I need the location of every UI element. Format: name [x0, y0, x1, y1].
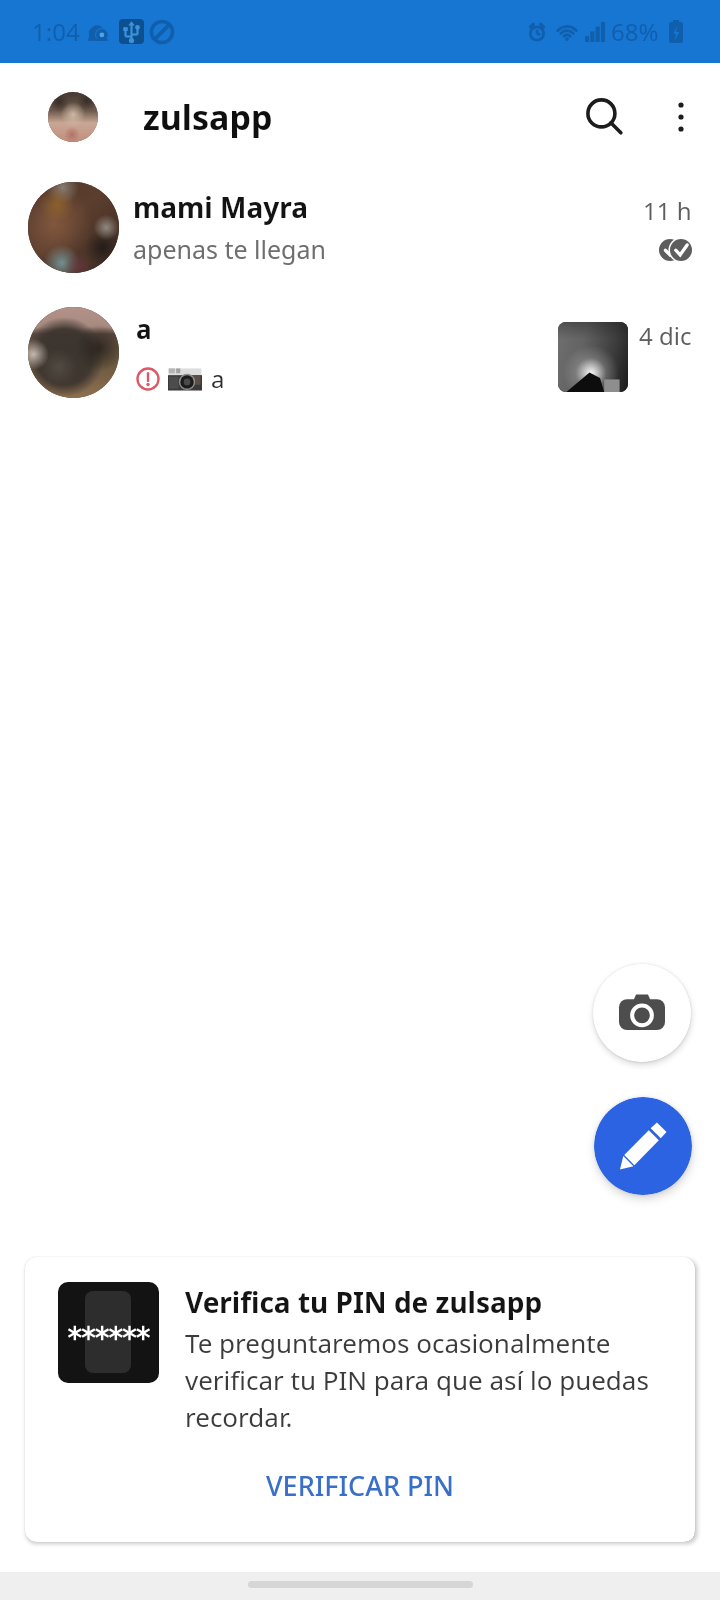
staticText: mami Mayra: [133, 188, 308, 226]
staticText: 68%: [611, 15, 659, 48]
staticText: Verifica tu PIN de zulsapp: [185, 1283, 543, 1321]
button[interactable]: Profile: [48, 92, 98, 142]
staticText: 11 h: [643, 194, 692, 227]
staticText: VERIFICAR PIN: [266, 1467, 454, 1504]
button[interactable]: More options: [649, 85, 713, 149]
staticText: zulsapp: [143, 94, 273, 140]
staticText: Te preguntaremos ocasionalmente verifica…: [185, 1325, 685, 1435]
button[interactable]: Camera: [593, 964, 691, 1062]
button[interactable]: VERIFICAR PIN: [250, 1457, 470, 1514]
button[interactable]: mami Mayra: [0, 170, 720, 284]
staticText: apenas te llegan: [133, 232, 326, 266]
staticText: 4 dic: [639, 319, 692, 352]
staticText: 1:04: [32, 15, 80, 48]
button[interactable]: a: [0, 284, 720, 421]
button[interactable]: Search: [573, 85, 637, 149]
button[interactable]: New message: [594, 1097, 692, 1195]
staticText: a: [211, 362, 225, 395]
staticText: a: [136, 311, 152, 346]
